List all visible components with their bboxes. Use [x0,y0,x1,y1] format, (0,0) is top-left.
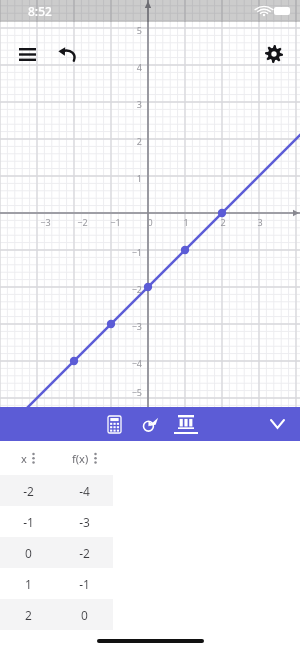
staticText: −3 [40,216,51,228]
button[interactable]: Calculator [96,407,132,441]
staticText: 1 [183,216,189,228]
staticText: −1 [131,246,142,258]
button[interactable]: 1 [0,568,113,599]
button[interactable]: Settings [258,38,290,70]
staticText: −2 [131,283,142,295]
button[interactable]: x [0,441,56,475]
staticText: -1 [23,514,34,530]
staticText: −4 [131,357,142,369]
button[interactable]: Undo [52,39,82,69]
staticText: −2 [77,216,88,228]
staticText: x [21,451,27,466]
staticText: -4 [79,483,90,499]
button[interactable]: -2 [0,475,113,506]
button[interactable]: Menu [12,39,42,69]
button[interactable]: Table [168,407,204,441]
button[interactable]: f(x) [56,441,113,475]
staticText: 1 [136,172,142,184]
staticText: -1 [79,576,90,592]
staticText: 5 [136,24,142,36]
staticText: 8:52 [28,3,52,19]
button[interactable]: -1 [0,506,113,537]
button[interactable]: 0 [0,537,113,568]
staticText: 1 [25,576,32,592]
button[interactable]: 2 [0,599,113,630]
button[interactable]: Collapse [262,409,292,439]
staticText: 3 [136,98,142,110]
staticText: -2 [23,483,34,499]
staticText: −5 [131,386,142,398]
staticText: 0 [25,545,32,561]
staticText: -2 [79,545,90,561]
staticText: 4 [136,61,142,73]
staticText: 0 [147,216,153,228]
staticText: −3 [131,320,142,332]
staticText: -3 [79,514,90,530]
staticText: f(x) [72,451,89,466]
staticText: 2 [25,607,32,623]
staticText: 0 [81,607,88,623]
staticText: −1 [110,216,121,228]
staticText: 2 [136,135,142,147]
staticText: 3 [257,216,263,228]
button[interactable]: Geometry [132,407,168,441]
staticText: 2 [220,216,226,228]
